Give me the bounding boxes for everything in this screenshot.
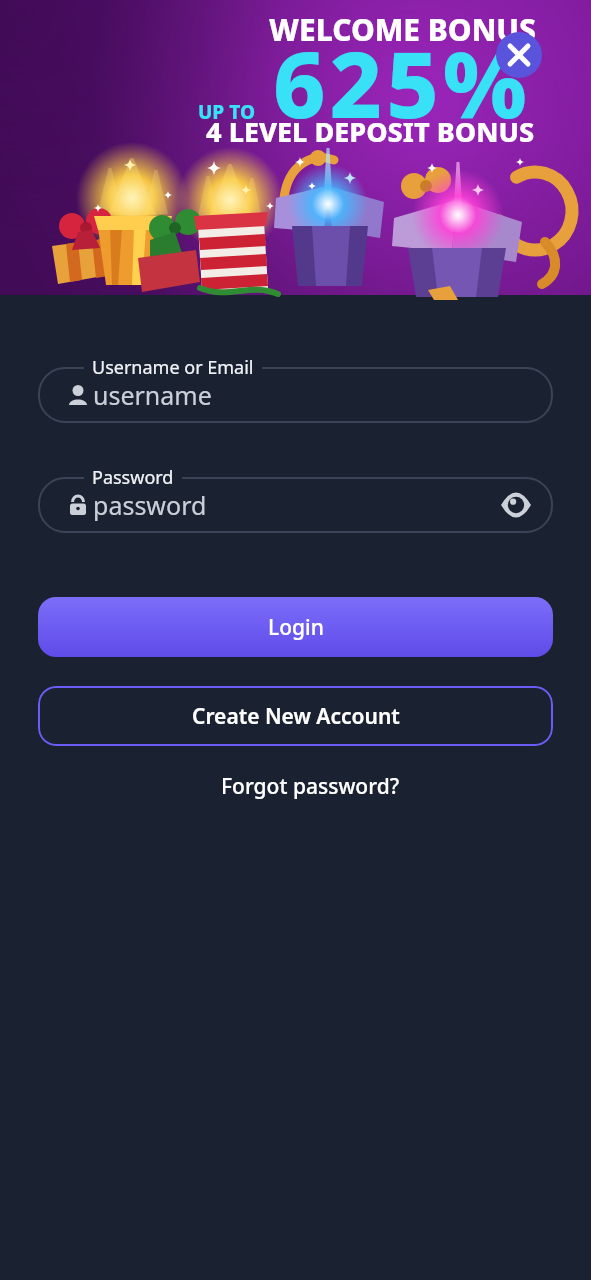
button[interactable]: Login	[38, 597, 553, 657]
staticText: Username or Email	[92, 355, 254, 380]
button[interactable]: Create New Account	[38, 686, 553, 746]
staticText: WELCOME BONUS	[269, 9, 536, 50]
button[interactable]: password	[38, 477, 553, 533]
staticText: Forgot password?	[221, 772, 400, 801]
staticText: 625%	[273, 21, 531, 145]
staticText: password	[93, 488, 207, 522]
button[interactable]	[496, 32, 542, 78]
staticText: Password	[92, 465, 174, 490]
staticText: 4 LEVEL DEPOSIT BONUS	[206, 113, 535, 150]
staticText: UP TO	[198, 99, 256, 125]
button[interactable]: username	[38, 367, 553, 423]
staticText: username	[93, 378, 212, 412]
staticText: Create New Account	[192, 702, 400, 731]
staticText: Login	[268, 613, 324, 642]
button[interactable]: Forgot password?	[215, 766, 406, 807]
